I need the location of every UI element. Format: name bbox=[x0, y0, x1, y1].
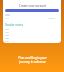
button[interactable] bbox=[5, 40, 61, 43]
staticText: Plan and Begin your journey in advance bbox=[18, 56, 47, 64]
button[interactable] bbox=[5, 31, 61, 34]
button[interactable] bbox=[5, 28, 61, 31]
button[interactable] bbox=[5, 9, 59, 12]
staticText: Popular routes bbox=[5, 23, 24, 26]
button[interactable] bbox=[5, 34, 61, 37]
staticText: Create your account bbox=[19, 4, 46, 7]
button[interactable] bbox=[5, 37, 61, 40]
